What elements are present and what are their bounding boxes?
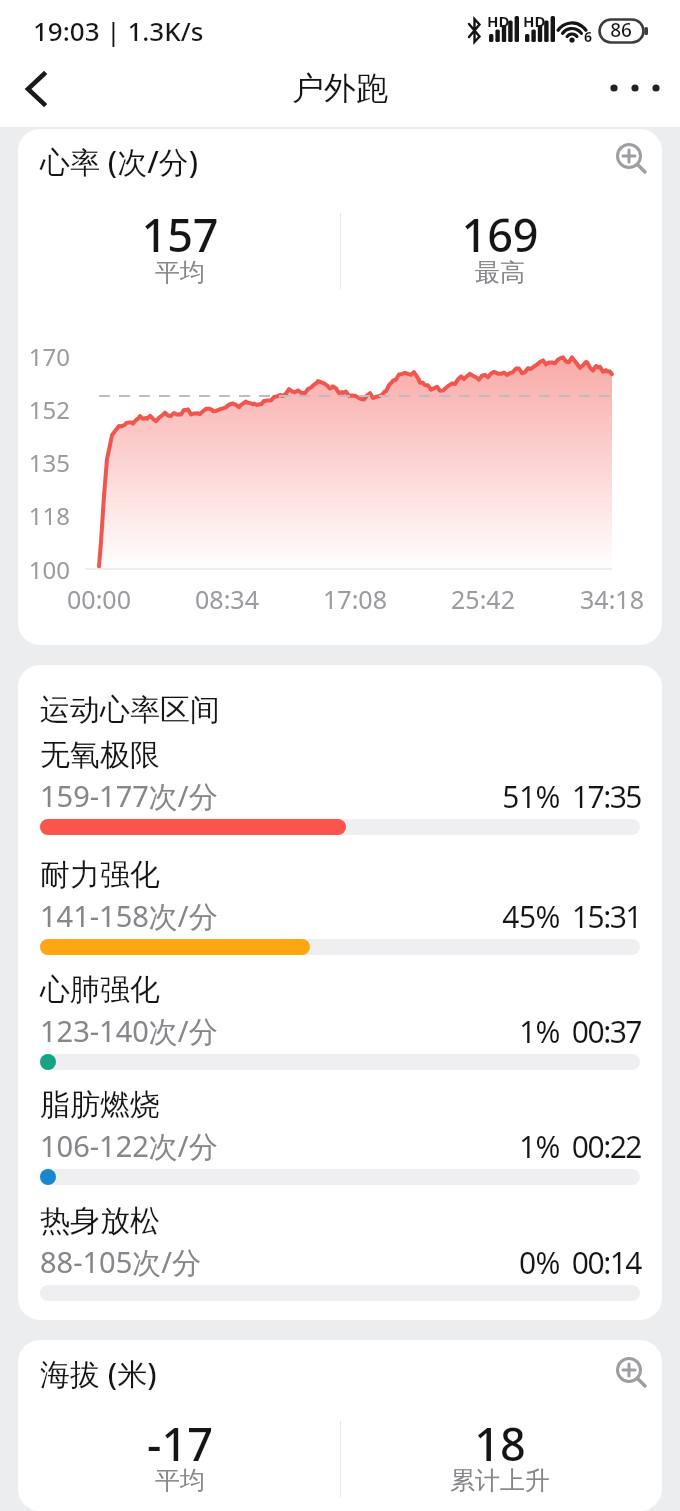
staticText: HD bbox=[523, 11, 546, 31]
staticText: 0% bbox=[518, 1242, 560, 1283]
button[interactable] bbox=[602, 66, 670, 110]
staticText: 118 bbox=[28, 499, 70, 532]
staticText: 100 bbox=[28, 553, 70, 586]
staticText: 17:08 bbox=[323, 582, 387, 616]
staticText: 无氧极限 bbox=[40, 736, 160, 774]
staticText: 脂肪燃烧 bbox=[40, 1086, 160, 1124]
button[interactable] bbox=[12, 70, 56, 114]
staticText: 106-122次/分 bbox=[40, 1126, 218, 1166]
staticText: 运动心率区间 bbox=[40, 691, 220, 729]
staticText: 170 bbox=[28, 340, 70, 373]
staticText: 平均 bbox=[155, 257, 205, 288]
staticText: 热身放松 bbox=[40, 1202, 160, 1240]
staticText: 51% bbox=[502, 776, 560, 817]
staticText: 135 bbox=[28, 446, 70, 479]
button[interactable] bbox=[18, 1191, 662, 1296]
staticText: 157 bbox=[141, 204, 219, 265]
staticText: 123-140次/分 bbox=[40, 1011, 218, 1051]
staticText: 00:22 bbox=[571, 1126, 641, 1167]
staticText: 平均 bbox=[155, 1465, 205, 1496]
staticText: 累计上升 bbox=[450, 1465, 550, 1496]
staticText: 45% bbox=[502, 896, 560, 937]
button[interactable] bbox=[18, 960, 662, 1065]
button[interactable] bbox=[612, 139, 652, 179]
staticText: 6 bbox=[584, 27, 593, 46]
staticText: 169 bbox=[461, 204, 539, 265]
button[interactable] bbox=[18, 1075, 662, 1180]
button[interactable] bbox=[612, 1353, 652, 1393]
staticText: 19:03 | 1.3K/s bbox=[33, 13, 204, 48]
staticText: 心肺强化 bbox=[40, 971, 160, 1009]
staticText: 86 bbox=[610, 17, 632, 43]
staticText: 户外跑 bbox=[292, 68, 388, 108]
staticText: 17:35 bbox=[571, 776, 641, 817]
staticText: 1% bbox=[518, 1011, 560, 1052]
staticText: 00:37 bbox=[571, 1011, 641, 1052]
staticText: 最高 bbox=[475, 257, 525, 288]
staticText: 15:31 bbox=[571, 896, 641, 937]
staticText: 心率 (次/分) bbox=[40, 141, 199, 182]
button[interactable] bbox=[18, 845, 662, 950]
button[interactable] bbox=[18, 725, 662, 830]
staticText: -17 bbox=[147, 1413, 213, 1474]
staticText: 88-105次/分 bbox=[40, 1242, 202, 1282]
staticText: HD bbox=[487, 11, 510, 31]
staticText: 00:00 bbox=[67, 582, 131, 616]
staticText: 00:14 bbox=[571, 1242, 641, 1283]
staticText: 141-158次/分 bbox=[40, 896, 218, 936]
staticText: 1% bbox=[518, 1126, 560, 1167]
staticText: 25:42 bbox=[451, 582, 515, 616]
staticText: 耐力强化 bbox=[40, 856, 160, 894]
staticText: 152 bbox=[28, 393, 70, 426]
staticText: 34:18 bbox=[580, 582, 644, 616]
staticText: 08:34 bbox=[195, 582, 259, 616]
staticText: 18 bbox=[474, 1413, 526, 1474]
staticText: 159-177次/分 bbox=[40, 776, 218, 816]
staticText: 海拔 (米) bbox=[40, 1353, 157, 1394]
